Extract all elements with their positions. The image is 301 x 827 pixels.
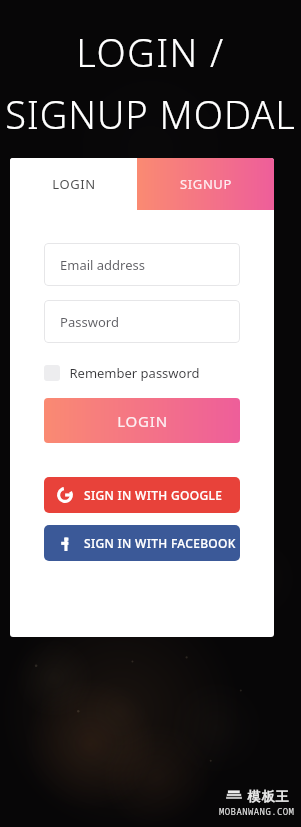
- staticText: MOBANWANG.COM: [219, 805, 295, 817]
- staticText: SIGNUP: [180, 175, 232, 193]
- staticText: Remember password: [69, 364, 200, 382]
- staticText: SIGNUP MODAL: [0, 88, 301, 140]
- staticText: Password: [60, 313, 119, 331]
- button[interactable]: Sign in with Google: [44, 477, 240, 513]
- button[interactable]: Email address: [44, 243, 240, 286]
- button[interactable]: Remember password: [44, 360, 200, 386]
- staticText: Email address: [60, 256, 145, 274]
- staticText: SIGN IN WITH FACEBOOK: [84, 535, 236, 551]
- staticText: LOGIN: [117, 411, 168, 431]
- button[interactable]: SIGNUP: [137, 158, 274, 210]
- button[interactable]: LOGIN: [44, 398, 240, 443]
- button[interactable]: Password: [44, 300, 240, 343]
- staticText: 模板王: [247, 788, 289, 804]
- staticText: LOGIN /: [0, 26, 301, 78]
- staticText: SIGN IN WITH GOOGLE: [84, 487, 223, 503]
- button[interactable]: LOGIN: [10, 158, 137, 210]
- button[interactable]: Sign in with Facebook: [44, 525, 240, 561]
- staticText: LOGIN: [52, 175, 96, 193]
